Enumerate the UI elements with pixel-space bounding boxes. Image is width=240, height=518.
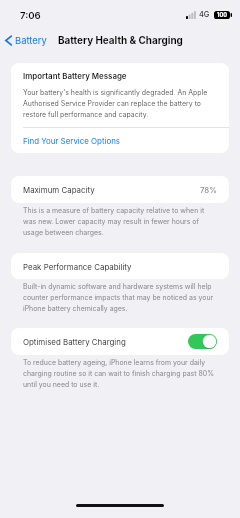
staticText: To reduce battery ageing, iPhone learns …: [23, 356, 216, 389]
staticText: Battery: [15, 35, 47, 46]
staticText: 100: [217, 12, 227, 19]
button[interactable]: Battery: [0, 32, 53, 49]
staticText: Find Your Service Options: [23, 135, 120, 146]
button[interactable]: Peak Performance Capability: [11, 253, 229, 279]
button[interactable]: Optimised Battery Charging, on: [188, 334, 217, 349]
staticText: Battery Health & Charging: [58, 34, 183, 46]
button[interactable]: Maximum Capacity: [11, 176, 229, 203]
staticText: 78%: [200, 184, 217, 195]
staticText: 7:06: [20, 10, 41, 22]
button[interactable]: Find Your Service Options: [11, 128, 229, 153]
staticText: Built-in dynamic software and hardware s…: [23, 280, 216, 313]
staticText: Peak Performance Capability: [23, 261, 132, 272]
button[interactable]: Optimised Battery Charging: [11, 328, 229, 355]
staticText: Important Battery Message: [23, 70, 127, 81]
staticText: Optimised Battery Charging: [23, 336, 126, 347]
staticText: 4G: [199, 10, 210, 19]
staticText: Your battery's health is significantly d…: [23, 86, 220, 119]
staticText: This is a measure of battery capacity re…: [23, 204, 216, 237]
staticText: Maximum Capacity: [23, 184, 95, 195]
